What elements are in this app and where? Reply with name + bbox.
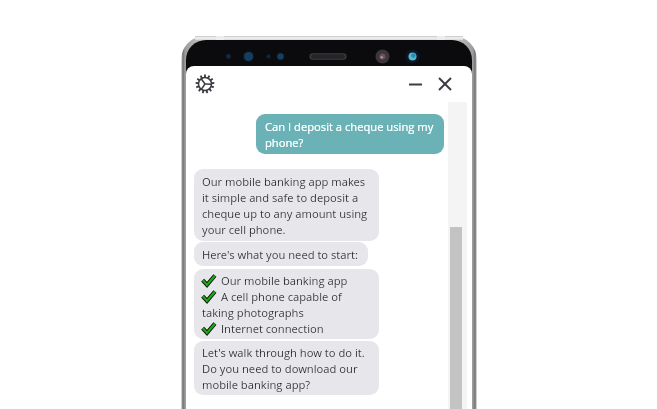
button[interactable]: Here's what you need to start: [194,242,368,266]
button[interactable]: Our mobile banking app makes it simple a… [194,169,379,241]
staticText: Our mobile banking app makes it simple a… [202,174,371,237]
button[interactable]: Can I deposit a cheque using my phone? [256,114,444,154]
button[interactable]: Minimize [403,72,427,96]
staticText: Here's what you need to start: [202,247,359,262]
staticText: Can I deposit a cheque using my phone? [265,119,436,150]
staticText: Let's walk through how to do it. Do you … [202,345,371,392]
staticText: *Our mobile banking app *A cell phone ca… [202,273,371,336]
button[interactable]: *Our mobile banking app *A cell phone ca… [194,269,379,339]
button[interactable]: Let's walk through how to do it. Do you … [194,341,379,395]
button[interactable]: Settings [193,72,217,96]
button[interactable]: Close [433,72,457,96]
